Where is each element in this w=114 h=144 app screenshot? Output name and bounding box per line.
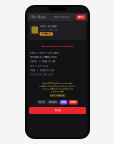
staticText: OPEN IN MAPS [41, 33, 51, 35]
staticText: EDIT [78, 16, 84, 19]
button[interactable]: ‹ My Maps [29, 15, 46, 19]
staticText: Description is a delicious mural [30, 56, 56, 58]
staticText: DELETE [39, 101, 45, 103]
staticText: update you will be in advantage label up… [42, 88, 73, 90]
staticText: CLOSE [54, 109, 60, 112]
button[interactable]: DELETE [37, 100, 46, 104]
staticText: This map cannot be restored once deleted [41, 45, 74, 47]
button[interactable]: EXPORT [69, 100, 78, 104]
staticText: DUPLICATE [49, 101, 57, 103]
staticText: Created 5 days ago [39, 29, 57, 31]
staticText: World all was online shelter [30, 74, 54, 76]
staticText: Name: A one-off 2024 sparks [30, 52, 59, 54]
button[interactable]: CLOSE [29, 107, 86, 114]
staticText: UPDATE TO AVAILABLE [49, 95, 65, 97]
button[interactable]: DUPLICATE [47, 100, 58, 104]
staticText: ‹ My Maps [29, 15, 46, 19]
staticText: Owner: A. Maps for sale [30, 60, 55, 63]
button[interactable]: EDIT [76, 15, 85, 20]
staticText: SHARE [61, 101, 66, 103]
staticText: Name: My maps [39, 25, 56, 28]
staticText: EXPORT [70, 101, 76, 103]
button[interactable]: OPEN IN MAPS [39, 32, 53, 36]
staticText: quicker in available [51, 90, 64, 93]
staticText: Types: 1. World for 2024 [30, 69, 54, 72]
staticText: This is an FULL Map. There are no proble… [42, 82, 73, 84]
staticText: world of local catalog [30, 65, 48, 67]
staticText: MAP DETAILS [54, 16, 69, 18]
staticText: available at this time. When the issue r… [39, 85, 76, 87]
button[interactable]: SHARE [60, 100, 67, 104]
